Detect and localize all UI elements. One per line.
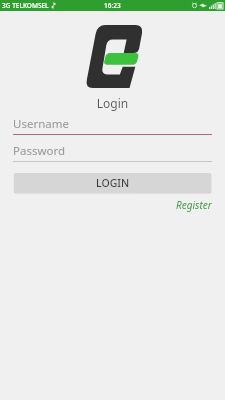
staticText: Username	[13, 116, 69, 132]
staticText: 3G TELKOMSEL	[2, 1, 49, 10]
button[interactable]: Username	[13, 116, 212, 135]
button[interactable]: Password	[13, 143, 212, 162]
staticText: Login	[0, 95, 225, 111]
staticText: 16:23	[104, 1, 121, 10]
staticText: LOGIN	[96, 176, 130, 190]
button[interactable]: LOGIN	[14, 173, 211, 193]
staticText: Password	[13, 143, 66, 159]
button[interactable]: Register	[176, 198, 212, 212]
